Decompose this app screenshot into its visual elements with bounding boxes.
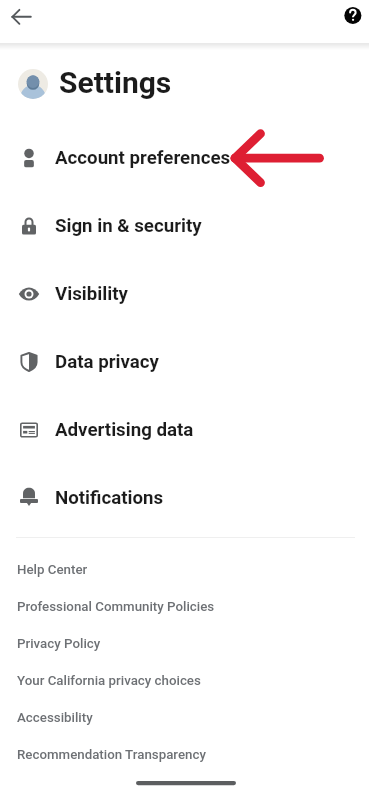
button[interactable]: Privacy Policy — [0, 625, 369, 662]
button[interactable]: Back — [0, 0, 40, 40]
button[interactable]: Your California privacy choices — [0, 662, 369, 699]
staticText: Recommendation Transparency — [17, 747, 206, 763]
button[interactable]: Sign in & security — [0, 192, 369, 260]
staticText: Data privacy — [55, 351, 159, 373]
button[interactable]: Professional Community Policies — [0, 588, 369, 625]
staticText: Advertising data — [55, 419, 194, 441]
button[interactable]: Visibility — [0, 260, 369, 328]
button[interactable]: Help Center — [0, 551, 369, 588]
staticText: Privacy Policy — [17, 636, 101, 652]
staticText: Your California privacy choices — [17, 673, 201, 689]
staticText: Settings — [59, 65, 172, 100]
staticText: Accessibility — [17, 710, 93, 726]
button[interactable]: Accessibility — [0, 699, 369, 736]
staticText: Professional Community Policies — [17, 599, 215, 615]
button[interactable]: Advertising data — [0, 396, 369, 464]
button[interactable]: Account preferences — [0, 124, 369, 192]
button[interactable]: Help — [336, 0, 369, 36]
staticText: Help Center — [17, 562, 88, 578]
button[interactable]: Data privacy — [0, 328, 369, 396]
button[interactable]: Recommendation Transparency — [0, 736, 369, 773]
button[interactable]: Notifications — [0, 464, 369, 532]
staticText: Notifications — [55, 487, 164, 509]
staticText: Account preferences — [55, 147, 231, 169]
staticText: Sign in & security — [55, 215, 202, 237]
staticText: Visibility — [55, 283, 128, 305]
